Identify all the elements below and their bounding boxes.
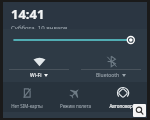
button[interactable]: Airplane mode — [51, 82, 99, 112]
staticText: 14:41 — [11, 5, 45, 23]
button[interactable]: Auto rotate — [99, 82, 147, 112]
staticText: Нет SIM-карты — [11, 103, 43, 109]
button[interactable]: Brightness — [3, 30, 147, 50]
staticText: Режим полета — [60, 103, 91, 109]
staticText: Bluetooth — [96, 72, 120, 79]
button[interactable]: 14:41 — [3, 2, 147, 29]
button[interactable]: Bluetooth — [75, 53, 147, 80]
staticText: Wi-Fi — [30, 72, 42, 79]
staticText: Автоповорот — [109, 103, 138, 109]
staticText: Суббота, 10 января — [11, 24, 68, 29]
button[interactable]: No SIM card — [3, 82, 51, 112]
button[interactable]: Search — [133, 104, 146, 117]
button[interactable]: Wi-Fi — [3, 53, 75, 80]
